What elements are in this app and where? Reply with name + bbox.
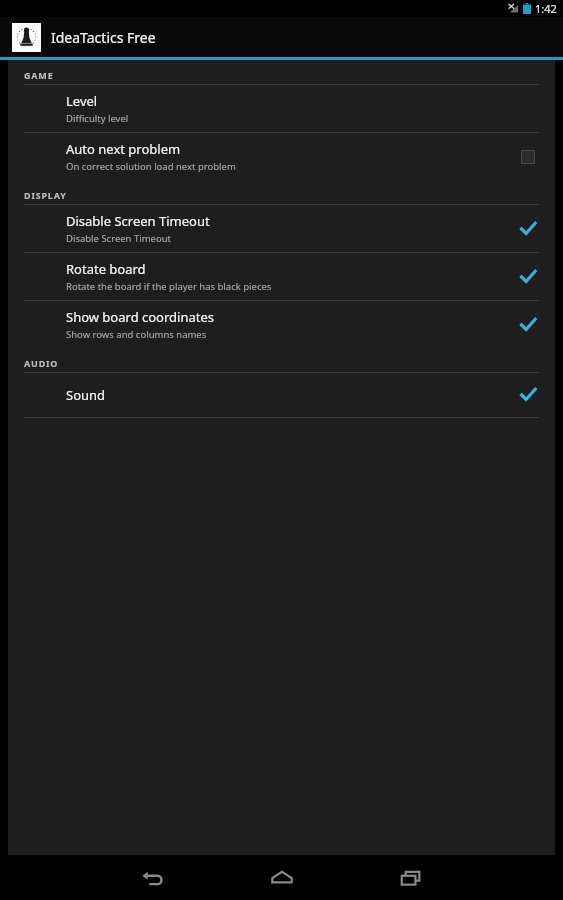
staticText: Rotate the board if the player has black… — [66, 280, 272, 293]
staticText: Sound — [66, 386, 106, 404]
button[interactable]: Show board coordinates — [8, 301, 555, 348]
staticText: Disable Screen Timeout — [66, 212, 210, 230]
button[interactable]: Back — [130, 855, 176, 900]
button[interactable]: Checked — [515, 216, 541, 242]
button[interactable]: Checked — [515, 382, 541, 408]
staticText: IdeaTactics Free — [51, 28, 156, 47]
staticText: GAME — [24, 69, 54, 81]
staticText: Rotate board — [66, 260, 146, 278]
button[interactable]: IdeaTactics Free — [0, 17, 563, 57]
button[interactable]: Checked — [515, 312, 541, 338]
button[interactable]: Checked — [515, 264, 541, 290]
button[interactable]: Unchecked — [515, 144, 541, 170]
staticText: Show rows and columns names — [66, 328, 207, 341]
staticText: Show board coordinates — [66, 308, 215, 326]
button[interactable]: Rotate board — [8, 253, 555, 300]
button[interactable]: Level — [8, 85, 555, 132]
staticText: Disable Screen Timeout — [66, 232, 171, 245]
button[interactable]: Auto next problem — [8, 133, 555, 180]
staticText: On correct solution load next problem — [66, 160, 236, 173]
staticText: Difficulty level — [66, 112, 129, 125]
button[interactable]: Recent apps — [388, 855, 434, 900]
staticText: AUDIO — [24, 357, 59, 369]
staticText: Level — [66, 92, 98, 110]
button[interactable]: Home — [259, 855, 305, 900]
staticText: DISPLAY — [24, 189, 67, 201]
button[interactable]: Sound — [8, 373, 555, 417]
staticText: 1:42 — [535, 1, 557, 16]
button[interactable]: Disable Screen Timeout — [8, 205, 555, 252]
staticText: Auto next problem — [66, 140, 181, 158]
